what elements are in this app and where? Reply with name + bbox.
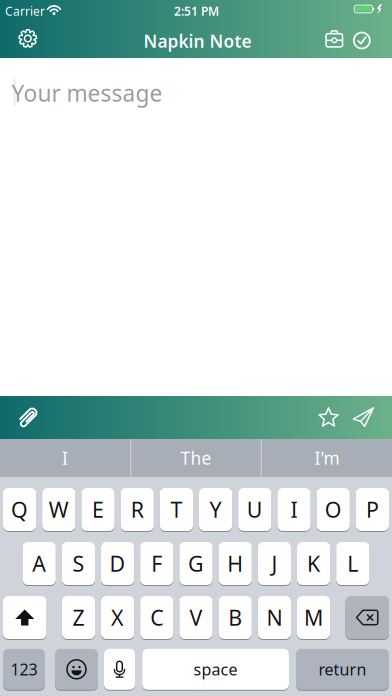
staticText: I xyxy=(290,495,297,524)
staticText: C xyxy=(150,603,163,632)
staticText: Napkin Note xyxy=(143,29,251,52)
button[interactable]: Settings xyxy=(16,26,40,50)
button[interactable]: Y xyxy=(199,487,232,531)
staticText: return xyxy=(318,659,366,680)
button[interactable]: Done xyxy=(351,29,373,51)
staticText: G xyxy=(188,549,204,578)
button[interactable]: Attach xyxy=(15,405,39,430)
staticText: O xyxy=(325,495,342,524)
staticText: Q xyxy=(11,495,28,524)
staticText: U xyxy=(247,495,263,524)
button[interactable]: Z xyxy=(62,595,95,639)
staticText: Carrier xyxy=(5,3,45,19)
button[interactable]: I'm xyxy=(262,439,392,477)
button[interactable]: A xyxy=(23,541,56,585)
staticText: X xyxy=(111,603,124,632)
staticText: I xyxy=(62,446,68,469)
button[interactable]: J xyxy=(258,541,291,585)
staticText: S xyxy=(72,549,84,578)
button[interactable]: Archive xyxy=(322,27,346,51)
button[interactable]: 123 xyxy=(3,648,45,690)
button[interactable]: space xyxy=(142,648,289,690)
button[interactable]: G xyxy=(179,541,213,585)
staticText: D xyxy=(110,549,126,578)
button[interactable]: Send xyxy=(352,407,374,428)
button[interactable]: S xyxy=(62,541,95,585)
button[interactable]: P xyxy=(356,487,389,531)
staticText: I'm xyxy=(314,446,339,469)
button[interactable]: O xyxy=(317,487,350,531)
staticText: A xyxy=(32,549,46,578)
staticText: J xyxy=(271,549,277,578)
button[interactable]: Delete xyxy=(345,595,389,639)
staticText: B xyxy=(228,603,242,632)
button[interactable]: C xyxy=(140,595,173,639)
button[interactable]: I xyxy=(0,439,130,477)
button[interactable]: V xyxy=(179,595,213,639)
button[interactable]: M xyxy=(297,595,330,639)
staticText: P xyxy=(366,495,379,524)
button[interactable]: Q xyxy=(3,487,36,531)
staticText: T xyxy=(170,495,182,524)
button[interactable]: The xyxy=(131,439,261,477)
staticText: space xyxy=(194,659,238,680)
staticText: N xyxy=(266,603,282,632)
button[interactable]: F xyxy=(140,541,173,585)
button[interactable]: Dictation xyxy=(104,648,135,690)
button[interactable]: X xyxy=(101,595,134,639)
button[interactable]: Favorite xyxy=(317,406,339,428)
button[interactable]: Shift xyxy=(3,595,46,639)
button[interactable]: return xyxy=(296,648,389,690)
staticText: Z xyxy=(72,603,84,632)
staticText: V xyxy=(189,603,202,632)
button[interactable]: N xyxy=(258,595,291,639)
button[interactable]: H xyxy=(219,541,252,585)
button[interactable]: B xyxy=(219,595,252,639)
staticText: Your message xyxy=(11,78,162,108)
staticText: R xyxy=(131,495,144,524)
staticText: M xyxy=(304,603,323,632)
staticText: Y xyxy=(210,495,222,524)
button[interactable]: L xyxy=(336,541,369,585)
staticText: H xyxy=(227,549,243,578)
button[interactable]: I xyxy=(277,487,311,531)
button[interactable]: D xyxy=(101,541,134,585)
button[interactable]: R xyxy=(121,487,154,531)
button[interactable]: K xyxy=(297,541,330,585)
staticText: W xyxy=(49,495,69,524)
button[interactable]: U xyxy=(238,487,271,531)
staticText: K xyxy=(307,549,320,578)
button[interactable]: E xyxy=(81,487,115,531)
staticText: E xyxy=(92,495,104,524)
button[interactable]: T xyxy=(160,487,193,531)
button[interactable]: Emoji xyxy=(55,648,98,690)
staticText: 2:51 PM xyxy=(174,3,219,19)
staticText: F xyxy=(151,549,162,578)
staticText: The xyxy=(180,446,211,469)
button[interactable]: W xyxy=(42,487,75,531)
staticText: 123 xyxy=(10,659,37,680)
staticText: L xyxy=(347,549,358,578)
